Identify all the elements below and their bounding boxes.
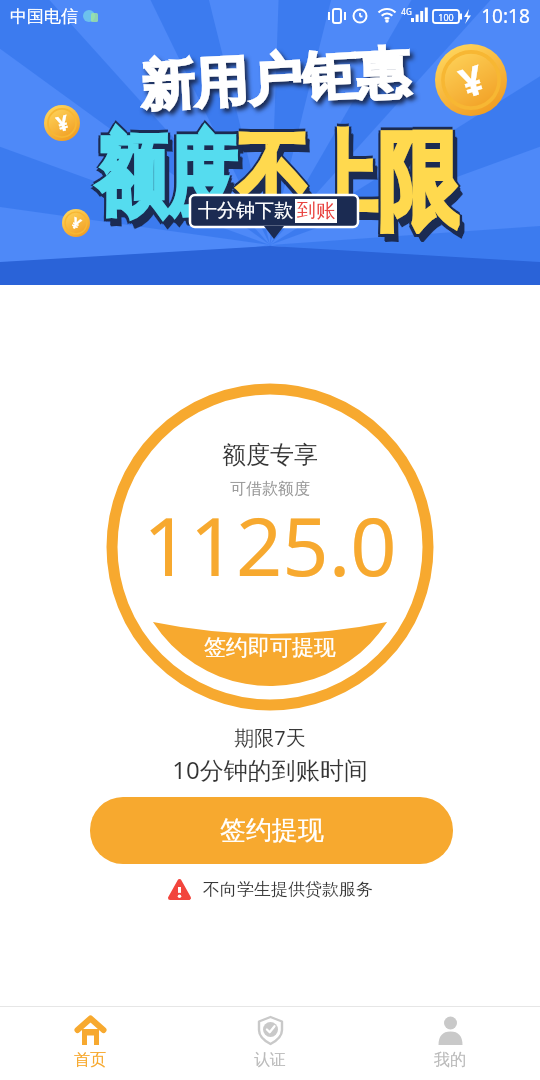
- staticText: 额度: [94, 122, 234, 235]
- staticText: 限: [375, 119, 457, 237]
- staticText: 限: [379, 116, 462, 234]
- button[interactable]: 我的: [360, 1007, 540, 1080]
- staticText: 不上: [237, 122, 377, 235]
- staticText: 额度: [96, 122, 237, 235]
- staticText: 不上: [241, 127, 382, 240]
- staticText: 不上: [234, 119, 375, 232]
- staticText: 认证: [254, 1050, 286, 1070]
- staticText: 额度: [101, 127, 241, 240]
- staticText: 限: [379, 119, 462, 237]
- staticText: ¥: [52, 108, 73, 139]
- staticText: 10分钟的到账时间: [172, 753, 368, 786]
- staticText: 签约即可提现: [204, 634, 336, 662]
- staticText: 签约提现: [220, 814, 324, 847]
- staticText: 限: [377, 119, 460, 237]
- button[interactable]: 认证: [180, 1007, 360, 1080]
- staticText: 期限7天: [234, 724, 306, 751]
- staticText: 额度: [99, 122, 239, 235]
- staticText: 不向学生提供贷款服务: [203, 879, 373, 900]
- staticText: 1125.0: [143, 489, 397, 599]
- staticText: 可借款额度: [230, 479, 310, 499]
- staticText: ¥: [452, 51, 491, 109]
- staticText: 额度: [96, 119, 237, 232]
- staticText: 不上: [239, 119, 379, 232]
- staticText: 限: [381, 123, 464, 241]
- staticText: 额度: [96, 116, 237, 229]
- staticText: ¥: [68, 212, 85, 234]
- staticText: 限: [382, 124, 464, 242]
- staticText: 4G: [401, 6, 412, 17]
- staticText: 限: [377, 116, 460, 234]
- staticText: 不上: [239, 122, 379, 235]
- staticText: 额度: [94, 119, 234, 232]
- staticText: 不上: [237, 119, 377, 232]
- staticText: 限: [375, 116, 457, 234]
- staticText: 不上: [237, 116, 377, 229]
- button[interactable]: 首页: [0, 1007, 180, 1080]
- staticText: 不上: [234, 122, 375, 235]
- staticText: 新用户钜惠: [138, 39, 412, 121]
- staticText: 首页: [74, 1050, 106, 1070]
- staticText: 到账: [297, 199, 335, 223]
- staticText: 100: [438, 11, 454, 23]
- staticText: 限: [377, 113, 460, 231]
- staticText: 我的: [434, 1050, 466, 1070]
- staticText: 额度: [100, 126, 241, 239]
- staticText: 10:18: [481, 3, 530, 29]
- staticText: 额度专享: [222, 440, 318, 470]
- staticText: 中国电信: [10, 6, 78, 27]
- staticText: 不上: [241, 126, 381, 239]
- staticText: 十分钟下款: [198, 199, 293, 223]
- staticText: 额度: [99, 119, 239, 232]
- button[interactable]: 签约提现: [90, 797, 453, 864]
